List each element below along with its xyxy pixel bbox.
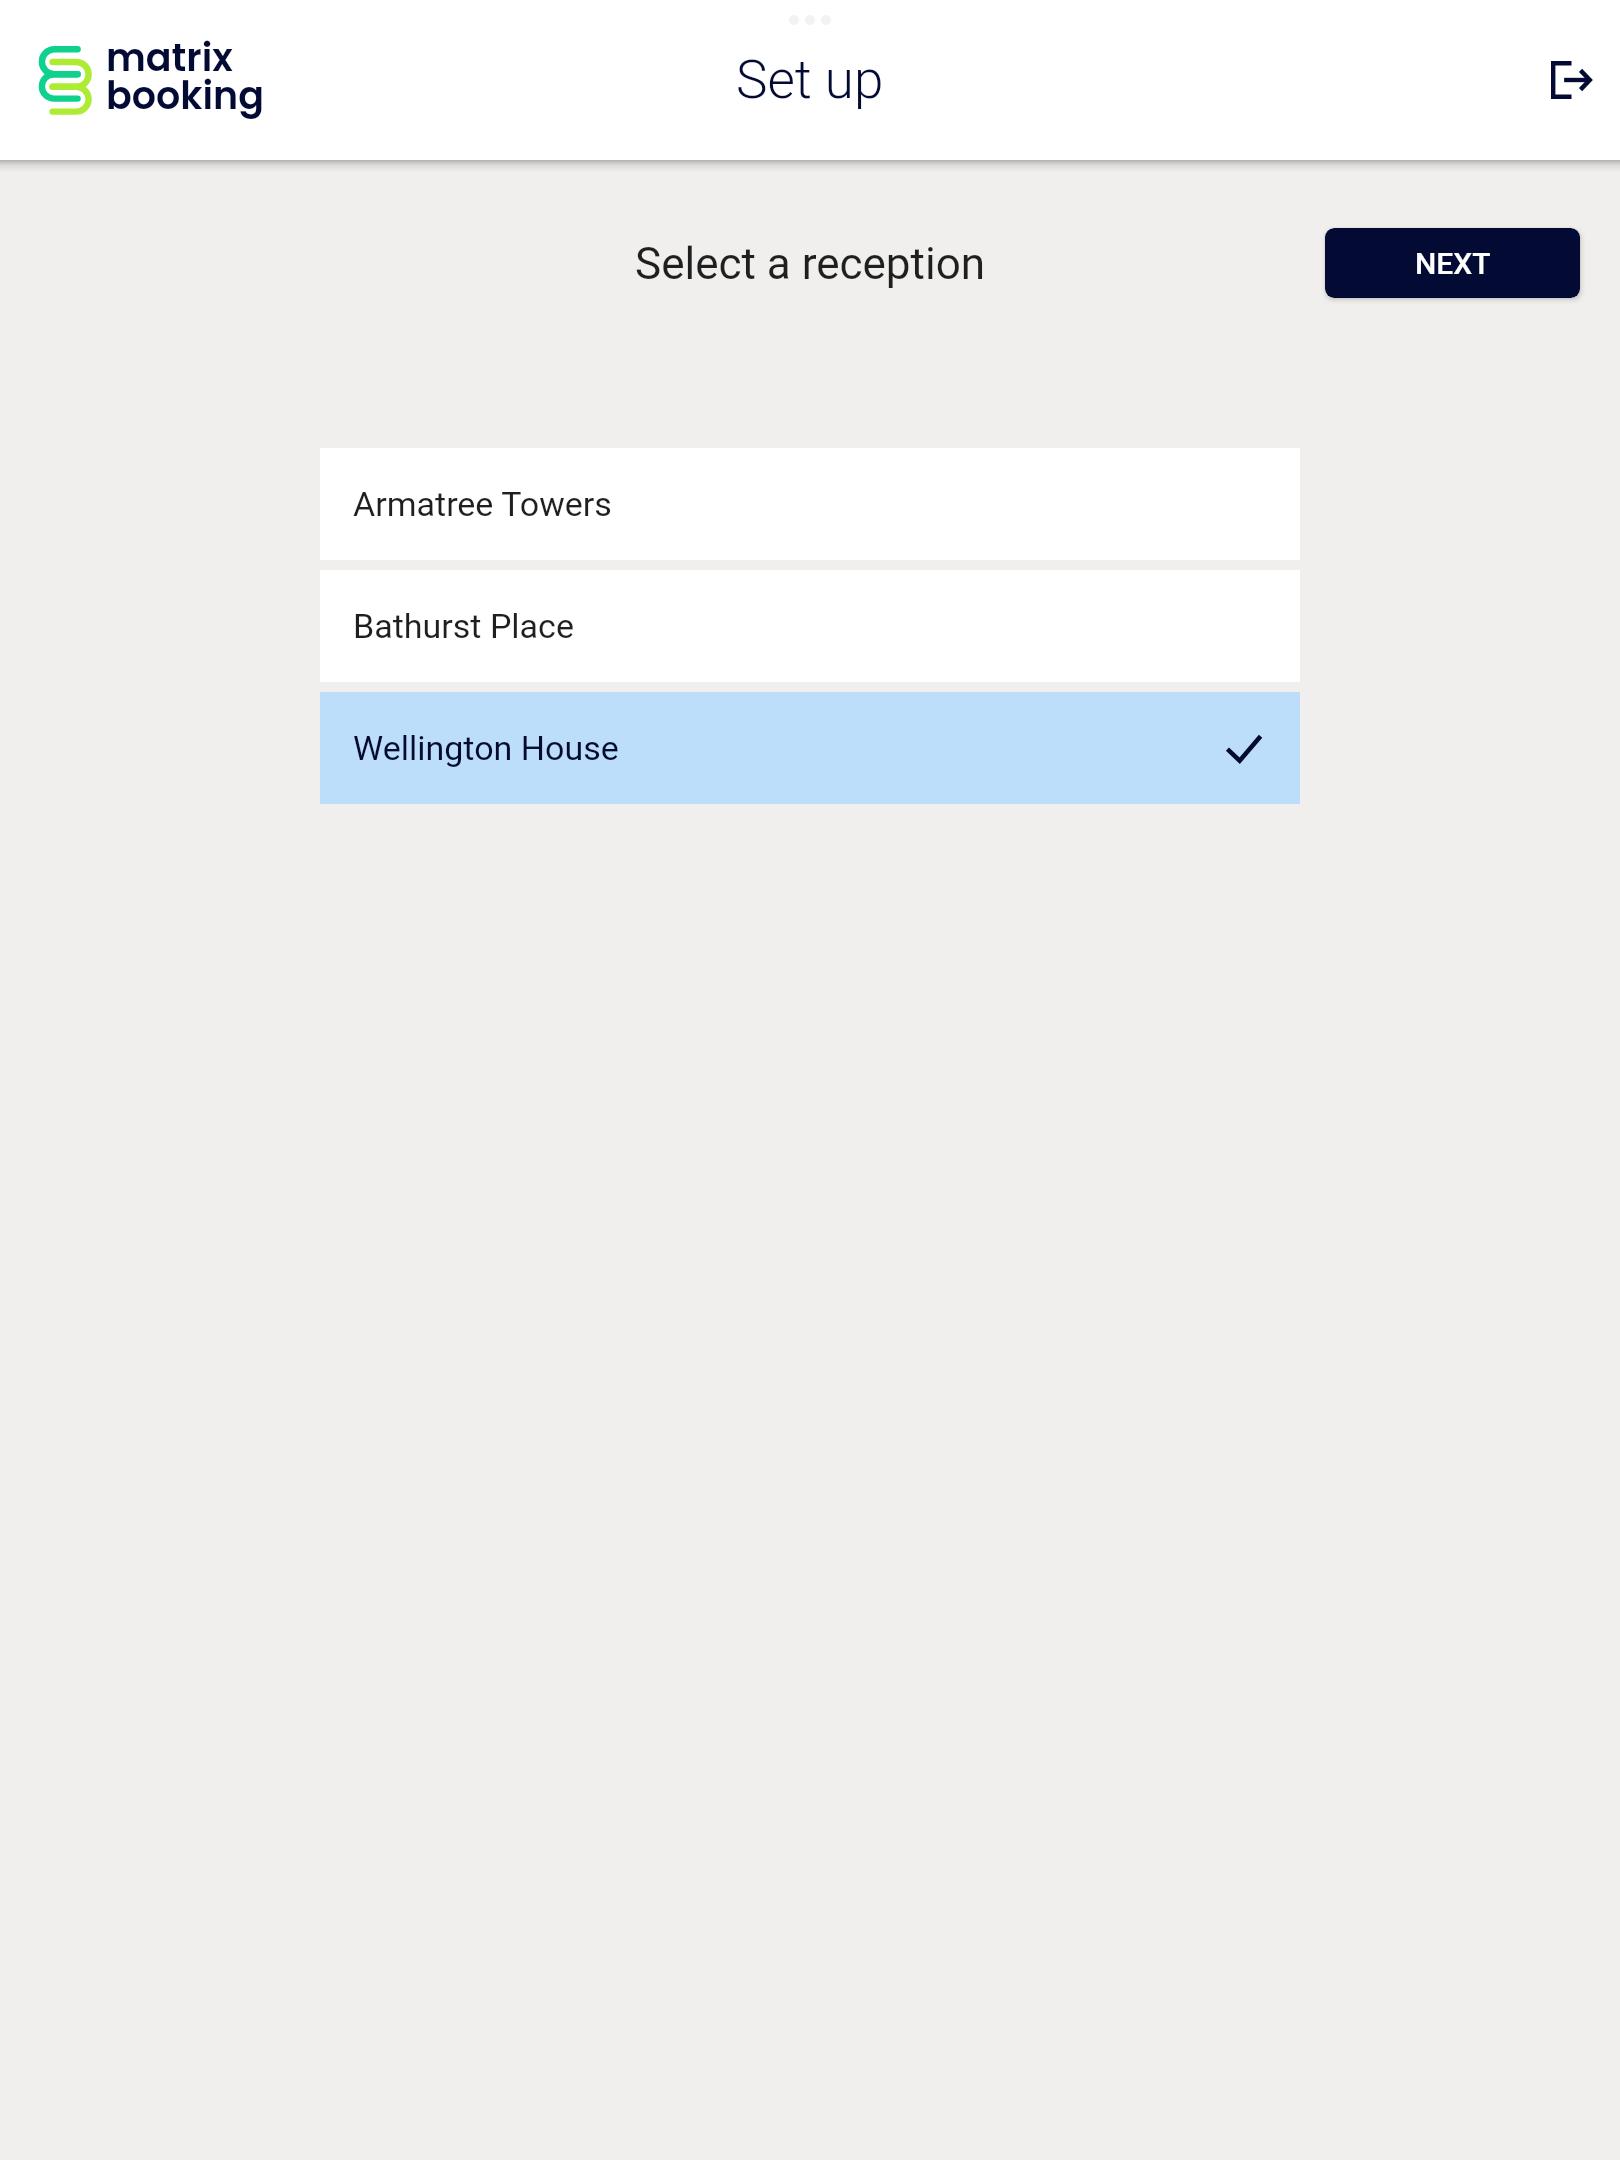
staticText: Set up	[736, 49, 884, 111]
staticText: Select a reception	[635, 238, 986, 290]
button[interactable]: Wellington House	[320, 692, 1300, 804]
button[interactable]: Log out	[1531, 40, 1611, 120]
staticText: matrix booking	[106, 31, 264, 122]
staticText: Bathurst Place	[353, 606, 1262, 646]
button[interactable]: Armatree Towers	[320, 448, 1300, 560]
staticText: NEXT	[1415, 246, 1491, 281]
button[interactable]: NEXT	[1325, 228, 1580, 298]
staticText: Armatree Towers	[353, 484, 1262, 524]
button[interactable]: Bathurst Place	[320, 570, 1300, 682]
staticText: Wellington House	[353, 728, 1226, 768]
